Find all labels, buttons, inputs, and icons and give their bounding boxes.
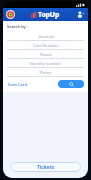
button[interactable]: TopUp xyxy=(31,10,60,20)
staticText: Identity number xyxy=(30,61,61,66)
staticText: Tickets xyxy=(37,164,55,171)
button[interactable]: Name xyxy=(7,50,84,58)
staticText: Card Number xyxy=(33,43,59,48)
button[interactable]: Phone xyxy=(7,68,84,76)
staticText: Scan Card xyxy=(8,82,27,87)
staticText: Name xyxy=(40,52,52,57)
button[interactable]: Account xyxy=(7,32,84,40)
staticText: TopUp xyxy=(38,10,60,20)
staticText: Phone xyxy=(39,70,52,75)
button[interactable]: Identity number xyxy=(7,59,84,67)
button[interactable]: Profile xyxy=(76,10,85,19)
staticText: Account xyxy=(38,34,54,39)
button[interactable]: Search xyxy=(58,80,84,88)
button[interactable]: Menu xyxy=(6,10,15,19)
button[interactable]: Card Number xyxy=(7,41,84,49)
staticText: Search by : xyxy=(7,24,28,29)
button[interactable]: Scan Card xyxy=(7,81,28,88)
button[interactable]: Tickets xyxy=(10,162,81,172)
